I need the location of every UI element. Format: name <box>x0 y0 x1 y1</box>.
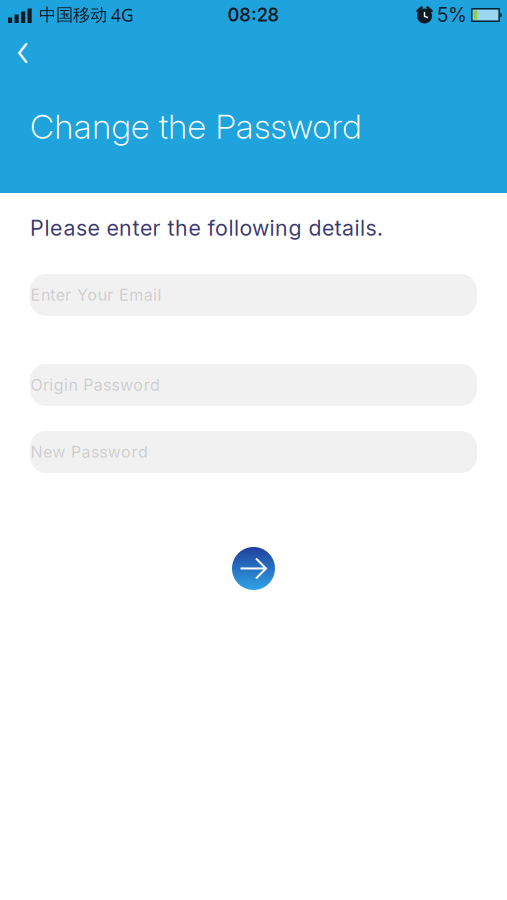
staticText: 5% <box>437 3 467 27</box>
staticText: Change the Password <box>30 106 361 147</box>
button[interactable]: Back <box>0 30 43 72</box>
staticText: 4G <box>111 3 134 26</box>
textField[interactable]: Enter Your Email <box>30 274 477 316</box>
staticText: Please enter the following details. <box>30 215 383 241</box>
staticText: Origin Password <box>30 375 160 395</box>
staticText: Enter Your Email <box>30 285 161 305</box>
staticText: 中国移动 <box>39 4 107 26</box>
staticText: New Password <box>30 442 148 462</box>
textField[interactable]: New Password <box>30 431 477 473</box>
textField[interactable]: Origin Password <box>30 364 477 406</box>
staticText: 08:28 <box>227 4 280 26</box>
button[interactable]: Submit <box>232 547 275 590</box>
